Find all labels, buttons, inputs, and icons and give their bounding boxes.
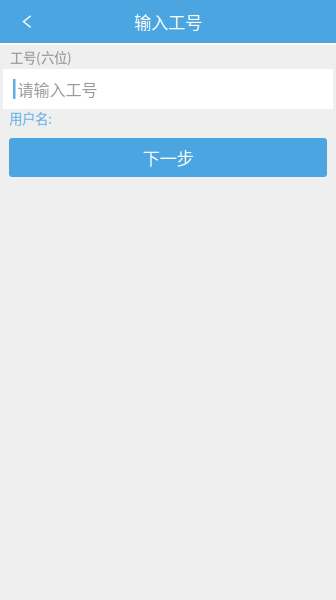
staticText: 下一步 [142,145,193,170]
staticText: 工号(六位) [10,47,72,67]
staticText: 输入工号 [134,9,202,34]
staticText: 请输入工号 [17,77,97,101]
button[interactable]: 请输入工号 [3,69,333,109]
button[interactable]: 下一步 [9,138,327,177]
button[interactable]: Back [0,0,54,43]
staticText: 用户名: [9,108,52,128]
